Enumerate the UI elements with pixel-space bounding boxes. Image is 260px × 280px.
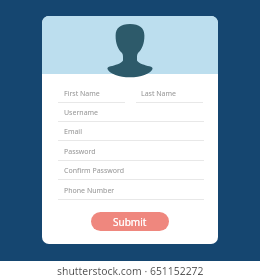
staticText: Email — [64, 127, 82, 137]
button[interactable] — [58, 87, 125, 103]
staticText: Password — [64, 147, 96, 157]
button[interactable] — [58, 164, 204, 180]
button[interactable] — [58, 184, 204, 200]
other: Profile photo — [107, 24, 153, 77]
button[interactable] — [58, 145, 204, 161]
button[interactable]: Submit — [91, 212, 169, 231]
staticText: Submit — [113, 215, 147, 229]
button[interactable] — [58, 106, 204, 122]
staticText: Username — [64, 108, 99, 118]
staticText: shutterstock.com · 651152272 — [57, 264, 204, 278]
button[interactable] — [58, 125, 204, 141]
staticText: Confirm Password — [64, 166, 125, 176]
button[interactable] — [136, 87, 203, 103]
staticText: First Name — [64, 89, 100, 99]
staticText: Phone Number — [64, 186, 115, 196]
staticText: Last Name — [141, 89, 177, 99]
